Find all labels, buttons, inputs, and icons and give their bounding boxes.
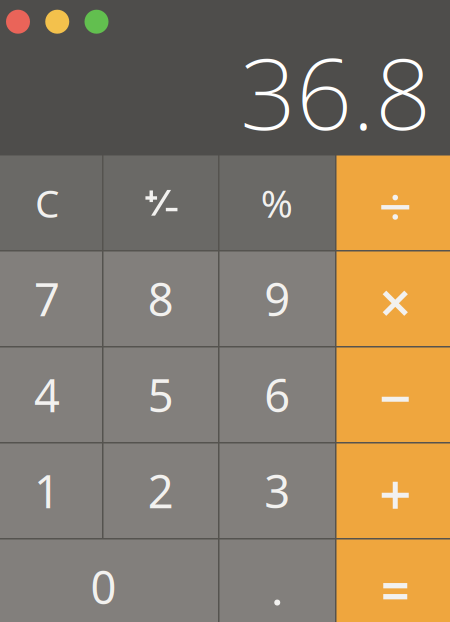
staticText: 9 [264,269,290,329]
staticText: 4 [34,365,60,425]
button[interactable]: 8 [103,251,218,346]
staticText: 6 [264,365,290,425]
staticText: 5 [148,365,174,425]
staticText: 8 [148,269,174,329]
staticText: 1 [34,461,60,521]
staticText: 7 [34,269,60,329]
staticText: 3 [264,461,290,521]
button[interactable]: Zoom [84,10,108,34]
button[interactable]: Equals [336,539,450,622]
button[interactable]: Add [336,443,450,538]
button[interactable]: Subtract [336,347,450,442]
staticText: 2 [148,461,174,521]
staticText: % [261,177,293,228]
button[interactable]: Minimize [45,10,69,34]
button[interactable]: 3 [219,443,335,538]
button[interactable]: 5 [103,347,218,442]
button[interactable]: Multiply [336,251,450,346]
button[interactable]: C [0,155,102,250]
button[interactable]: % [219,155,335,250]
button[interactable]: Close [6,10,30,34]
button[interactable]: 1 [0,443,102,538]
button[interactable]: 4 [0,347,102,442]
staticText: 0 [90,557,116,617]
button[interactable]: 9 [219,251,335,346]
button[interactable]: 7 [0,251,102,346]
button[interactable]: 0 [0,539,218,622]
button[interactable]: 2 [103,443,218,538]
button[interactable]: Plus minus [103,155,218,250]
button[interactable]: Divide [336,155,450,250]
staticText: 36.8 [240,26,431,157]
button[interactable]: 6 [219,347,335,442]
staticText: C [35,177,59,228]
button[interactable]: Decimal point [219,539,335,622]
